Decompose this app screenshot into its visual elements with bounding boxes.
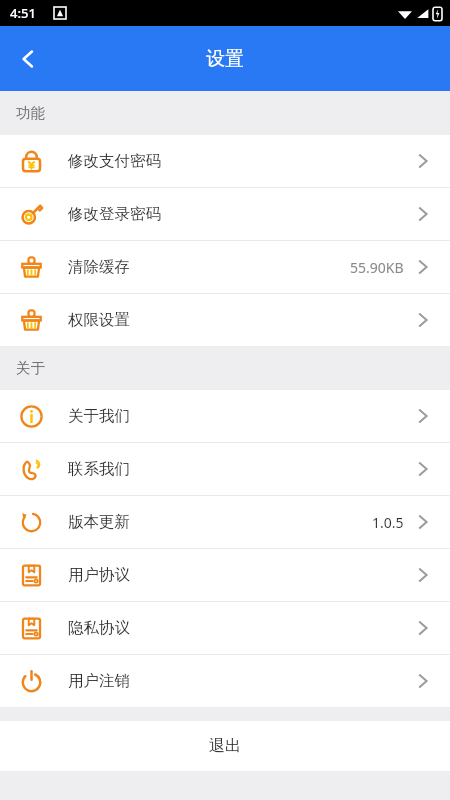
staticText: 1.0.5 [372, 513, 404, 532]
staticText: 4:51 [10, 4, 36, 22]
button[interactable]: 修改登录密码 [0, 188, 450, 240]
staticText: 版本更新 [68, 512, 130, 532]
staticText: 权限设置 [68, 310, 130, 330]
staticText: 55.90KB [350, 258, 404, 277]
button[interactable]: 修改支付密码 [0, 135, 450, 187]
button[interactable]: 用户注销 [0, 655, 450, 707]
staticText: 联系我们 [68, 459, 130, 479]
staticText: 功能 [16, 104, 45, 122]
staticText: 修改支付密码 [68, 151, 161, 171]
button[interactable]: 权限设置 [0, 294, 450, 346]
staticText: 退出 [209, 736, 241, 756]
button[interactable]: 用户协议 [0, 549, 450, 601]
button[interactable]: 隐私协议 [0, 602, 450, 654]
staticText: 关于我们 [68, 406, 130, 426]
staticText: 用户协议 [68, 565, 130, 585]
button[interactable]: 联系我们 [0, 443, 450, 495]
staticText: 修改登录密码 [68, 204, 161, 224]
button[interactable]: 关于我们 [0, 390, 450, 442]
staticText: 用户注销 [68, 671, 130, 691]
staticText: 清除缓存 [68, 257, 130, 277]
staticText: 设置 [206, 47, 244, 71]
button[interactable]: Back [0, 26, 56, 91]
button[interactable]: 版本更新 [0, 496, 450, 548]
staticText: 关于 [16, 359, 45, 377]
button[interactable]: 清除缓存 [0, 241, 450, 293]
staticText: 隐私协议 [68, 618, 130, 638]
button[interactable]: 退出 [0, 721, 450, 771]
